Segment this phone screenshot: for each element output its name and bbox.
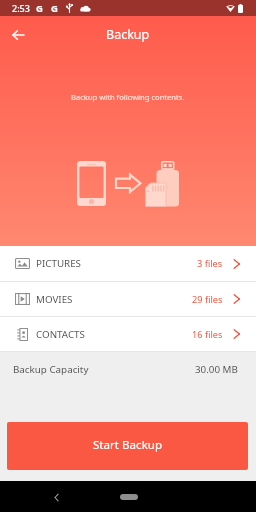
button[interactable]: Home [120,494,138,500]
button[interactable]: CONTACTS [0,317,256,351]
staticText: MOVIES [36,293,73,306]
staticText: 3 files [197,257,223,270]
staticText: PICTURES [36,257,81,270]
button[interactable]: Back [46,487,66,507]
staticText: Start Backup [93,437,163,453]
staticText: Backup with following contents. [71,92,185,102]
staticText: Backup [106,26,150,43]
staticText: 16 files [192,328,223,341]
staticText: G [51,2,58,15]
button[interactable]: MOVIES [0,282,256,316]
staticText: 2:53 [12,2,30,14]
staticText: G [36,2,43,15]
staticText: Backup Capacity [13,363,89,376]
button[interactable]: Start Backup [7,422,248,470]
staticText: CONTACTS [36,328,85,341]
button[interactable]: PICTURES [0,246,256,281]
staticText: 29 files [192,293,223,306]
button[interactable]: Back [4,21,32,49]
staticText: 30.00 MB [195,363,238,376]
